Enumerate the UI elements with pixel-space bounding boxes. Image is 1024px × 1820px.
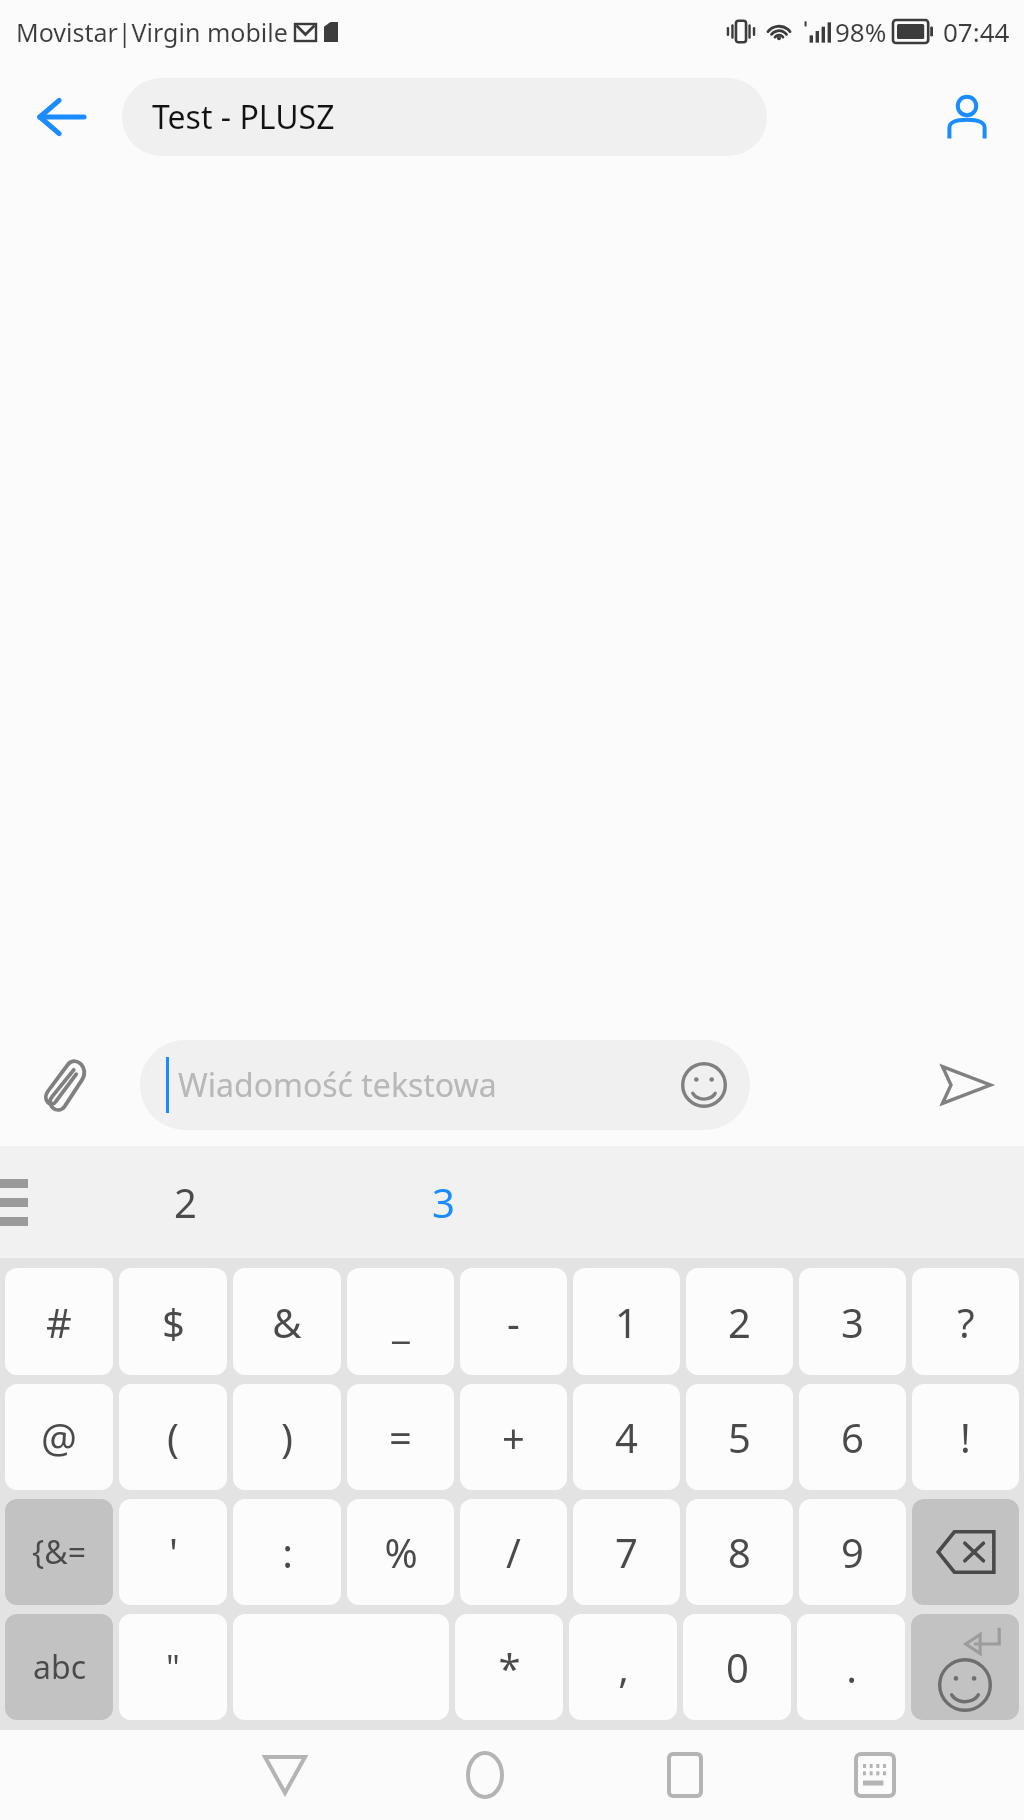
staticText: {&= [32, 1530, 86, 1574]
button[interactable]: Back [240, 1730, 330, 1820]
staticText: # [46, 1295, 72, 1349]
staticText: 5 [728, 1410, 751, 1464]
button[interactable]: Backspace [912, 1499, 1019, 1605]
staticText: = [389, 1410, 412, 1464]
button[interactable]: ( [119, 1384, 227, 1490]
staticText: 2 [728, 1295, 751, 1349]
staticText: 1 [615, 1295, 638, 1349]
staticText: ( [167, 1410, 179, 1464]
staticText: - [507, 1295, 520, 1349]
button[interactable]: & [233, 1268, 341, 1375]
button[interactable]: ) [233, 1384, 341, 1490]
button[interactable]: ? [912, 1268, 1019, 1375]
staticText: " [166, 1644, 180, 1690]
staticText: . [846, 1640, 857, 1694]
button[interactable]: - [460, 1268, 567, 1375]
button[interactable]: ' [119, 1499, 227, 1605]
button[interactable]: = [347, 1384, 454, 1490]
staticText: Movistar|Virgin mobile [16, 15, 288, 49]
button[interactable]: Attach file [26, 1049, 98, 1121]
button[interactable]: " [119, 1614, 227, 1720]
staticText: & [272, 1295, 302, 1349]
staticText: @ [41, 1410, 77, 1464]
staticText: 8 [728, 1525, 751, 1579]
staticText: 9 [841, 1525, 864, 1579]
staticText: 07:44 [943, 14, 1010, 49]
button[interactable]: , [569, 1614, 677, 1720]
staticText: Test - PLUSZ [152, 95, 335, 139]
button[interactable]: 7 [573, 1499, 680, 1605]
staticText: 0 [726, 1640, 749, 1694]
button[interactable]: abc [5, 1614, 113, 1720]
staticText: 7 [615, 1525, 638, 1579]
button[interactable]: Wiadomość tekstowa [140, 1040, 750, 1130]
staticText: _ [392, 1295, 410, 1349]
button[interactable]: 3 [799, 1268, 906, 1375]
button[interactable]: # [5, 1268, 113, 1375]
staticText: ' [169, 1525, 178, 1579]
button[interactable]: 2 [686, 1268, 793, 1375]
staticText: 6 [841, 1410, 864, 1464]
staticText: 4 [615, 1410, 638, 1464]
button[interactable]: 3 [318, 1146, 568, 1258]
button[interactable]: 0 [683, 1614, 791, 1720]
button[interactable]: Enter emoji [911, 1614, 1019, 1720]
button[interactable]: 2 [55, 1146, 315, 1258]
button[interactable]: . [797, 1614, 905, 1720]
staticText: / [506, 1525, 521, 1579]
staticText: % [384, 1525, 418, 1579]
staticText: 98% [835, 14, 887, 49]
button[interactable]: 6 [799, 1384, 906, 1490]
button[interactable]: + [460, 1384, 567, 1490]
staticText: ? [957, 1295, 975, 1349]
staticText: 3 [432, 1175, 455, 1229]
staticText: ! [960, 1410, 971, 1464]
button[interactable]: Emoji [672, 1053, 736, 1117]
button[interactable]: _ [347, 1268, 454, 1375]
button[interactable]: Back [26, 82, 96, 152]
button[interactable]: : [233, 1499, 341, 1605]
button[interactable]: 5 [686, 1384, 793, 1490]
staticText: 3 [841, 1295, 864, 1349]
button[interactable]: 1 [573, 1268, 680, 1375]
button[interactable]: @ [5, 1384, 113, 1490]
button[interactable]: * [455, 1614, 563, 1720]
button[interactable]: $ [119, 1268, 227, 1375]
button[interactable]: Send [928, 1047, 1004, 1123]
button[interactable]: % [347, 1499, 454, 1605]
button[interactable]: Test - PLUSZ [122, 78, 767, 156]
button[interactable]: Home [440, 1730, 530, 1820]
staticText: $ [162, 1295, 185, 1349]
button[interactable]: 4 [573, 1384, 680, 1490]
button[interactable]: Hide keyboard [830, 1730, 920, 1820]
staticText: * [498, 1640, 521, 1694]
staticText: Wiadomość tekstowa [178, 1063, 497, 1107]
staticText: + [502, 1410, 525, 1464]
staticText: : [282, 1525, 293, 1579]
button[interactable]: 9 [799, 1499, 906, 1605]
button[interactable]: Contact details [930, 80, 1004, 154]
staticText: ) [281, 1410, 293, 1464]
button[interactable]: {&= [5, 1499, 113, 1605]
staticText: , [618, 1640, 629, 1694]
staticText: 2 [174, 1175, 197, 1229]
button[interactable]: 8 [686, 1499, 793, 1605]
staticText: abc [33, 1645, 86, 1689]
button[interactable]: / [460, 1499, 567, 1605]
button[interactable]: ! [912, 1384, 1019, 1490]
button[interactable]: Recent apps [640, 1730, 730, 1820]
